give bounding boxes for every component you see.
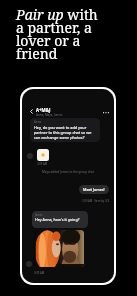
staticText: 3:09 AM — [37, 162, 48, 166]
staticText: 3:09 AM · Seen by 3/4 — [22, 199, 109, 203]
staticText: 3:09 AM — [34, 271, 45, 275]
staticText: James — [35, 213, 43, 217]
staticText: Anna, Maya, James — [36, 113, 63, 117]
staticText: Anna — [34, 120, 42, 124]
staticText: Hey Anna, how's it going? — [35, 217, 80, 222]
button[interactable]: Meet James! — [83, 187, 105, 192]
button[interactable]: More options — [102, 108, 110, 116]
staticText: Maya added James to the group chat — [22, 170, 114, 174]
staticText: Pair up with a partner, a lover or a fri… — [16, 5, 107, 63]
staticText: Hey, do you want to add your partner to … — [34, 125, 96, 140]
button[interactable]: Back — [27, 108, 34, 115]
staticText: A+M&J — [36, 107, 51, 113]
staticText: Meet James! — [83, 187, 105, 192]
